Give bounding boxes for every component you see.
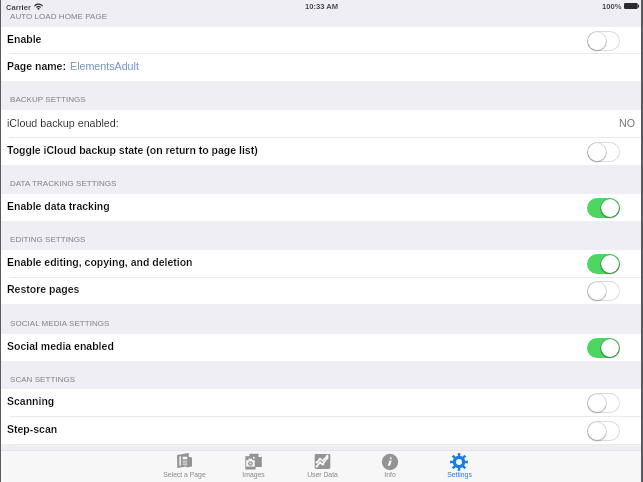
- button[interactable]: Enable editing, copying, and deletion: [0, 250, 643, 278]
- button[interactable]: Enable: [0, 27, 643, 55]
- staticText: Page name:: [7, 60, 66, 72]
- staticText: Enable data tracking: [7, 200, 110, 212]
- staticText: Social media enabled: [7, 340, 114, 352]
- button[interactable]: User Data: [288, 450, 356, 481]
- staticText: AUTO LOAD HOME PAGE: [10, 12, 108, 21]
- staticText: EDITING SETTINGS: [10, 235, 86, 244]
- button[interactable]: Restore pages: [0, 278, 643, 304]
- button[interactable]: Step-scan: [0, 417, 643, 444]
- staticText: Toggle iCloud backup state (on return to…: [7, 144, 258, 156]
- button[interactable]: Enable data tracking: [0, 194, 643, 221]
- button[interactable]: Page name:: [0, 54, 643, 81]
- staticText: Select a Page: [163, 471, 206, 479]
- staticText: Restore pages: [7, 283, 80, 295]
- staticText: SOCIAL MEDIA SETTINGS: [10, 319, 110, 328]
- staticText: Scanning: [7, 395, 55, 407]
- staticText: Carrier: [6, 3, 31, 11]
- button[interactable]: Images: [219, 450, 287, 481]
- staticText: BACKUP SETTINGS: [10, 95, 86, 104]
- button[interactable]: Social media enabled: [0, 334, 643, 361]
- button[interactable]: Scanning: [0, 389, 643, 417]
- staticText: Settings: [447, 471, 472, 479]
- button[interactable]: Toggle iCloud backup state (on return to…: [0, 138, 643, 165]
- staticText: Enable: [7, 33, 42, 45]
- staticText: 10:33 AM: [305, 2, 339, 10]
- staticText: NO: [619, 117, 636, 129]
- staticText: DATA TRACKING SETTINGS: [10, 179, 117, 188]
- button[interactable]: Select a Page: [150, 450, 218, 481]
- staticText: Images: [242, 471, 265, 479]
- staticText: Info: [384, 471, 396, 479]
- staticText: Step-scan: [7, 423, 58, 435]
- staticText: ElementsAdult: [70, 60, 139, 72]
- staticText: SCAN SETTINGS: [10, 375, 76, 384]
- button[interactable]: Settings: [425, 450, 493, 481]
- staticText: Enable editing, copying, and deletion: [7, 256, 193, 268]
- staticText: 100%: [602, 2, 622, 10]
- button[interactable]: iCloud backup enabled:: [0, 110, 643, 139]
- staticText: iCloud backup enabled:: [7, 117, 119, 129]
- button[interactable]: Info: [356, 450, 424, 481]
- staticText: User Data: [307, 471, 338, 479]
